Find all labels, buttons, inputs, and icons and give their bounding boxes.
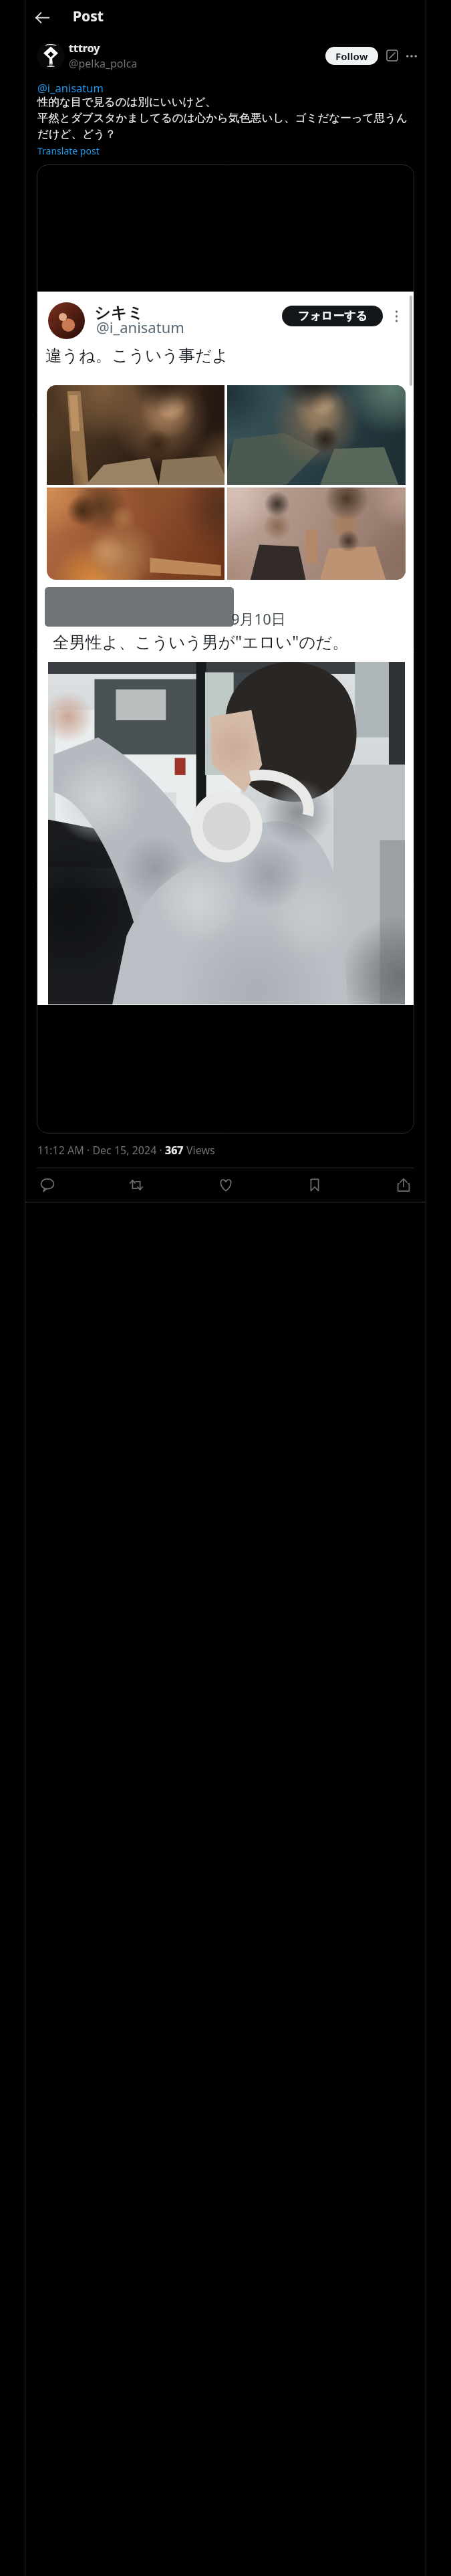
staticText: 違うね。こういう事だよ	[45, 345, 229, 366]
staticText: tttroy	[69, 41, 100, 56]
staticText: Post	[73, 7, 104, 26]
button[interactable]: Follow	[325, 47, 378, 65]
button[interactable]: Repost	[126, 1174, 147, 1196]
button[interactable]: Translate post	[37, 144, 100, 157]
staticText: 11:12 AM · Dec 15, 2024 ·	[37, 1143, 165, 1158]
staticText: Follow	[335, 49, 368, 63]
button[interactable]: Share	[393, 1174, 414, 1196]
staticText: 367	[165, 1143, 186, 1158]
button[interactable]: More	[404, 49, 418, 63]
staticText: 性的な目で見るのは別にいいけど、 平然とダブスタかましてるのは心から気色悪いし、…	[37, 95, 412, 141]
staticText: Translate post	[37, 144, 100, 157]
staticText: @pelka_polca	[69, 56, 138, 71]
button[interactable]: Back	[29, 4, 55, 31]
staticText: 全男性よ、こういう男が"エロい"のだ。	[53, 631, 349, 653]
staticText: @i_anisatum	[37, 80, 104, 95]
button[interactable]: Reply	[37, 1174, 58, 1196]
staticText: シキミ	[94, 303, 144, 323]
staticText: Views	[186, 1143, 215, 1158]
staticText: フォローする	[298, 309, 367, 323]
button[interactable]: シキミ	[37, 165, 414, 1134]
staticText: 9月10日	[231, 609, 286, 629]
button[interactable]: Bookmark	[304, 1174, 325, 1196]
button[interactable]: Post options	[385, 48, 400, 63]
button[interactable]: Like	[215, 1174, 237, 1196]
staticText: @i_anisatum	[96, 317, 184, 337]
